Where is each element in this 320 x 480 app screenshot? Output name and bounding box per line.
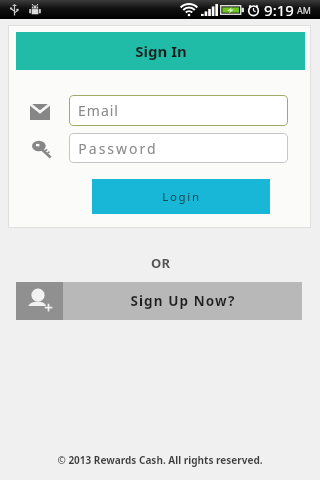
other: Email [30, 103, 50, 119]
staticText: OR [151, 254, 170, 272]
other: Password [30, 140, 50, 157]
button[interactable]: Login [92, 179, 270, 214]
staticText: Password [78, 139, 158, 158]
staticText: 9:19 [264, 0, 294, 19]
button[interactable]: Email [69, 95, 288, 126]
staticText: Sign Up Now? [130, 292, 236, 310]
staticText: Login [162, 189, 201, 205]
button[interactable]: Sign In [16, 32, 305, 70]
staticText: AM [297, 4, 311, 16]
other: Sign up [16, 282, 63, 320]
staticText: Email [78, 101, 119, 120]
staticText: Sign In [135, 41, 187, 61]
button[interactable]: Password [69, 133, 288, 163]
button[interactable]: Sign up [16, 282, 302, 320]
staticText: © 2013 Rewards Cash. All rights reserved… [57, 453, 263, 467]
